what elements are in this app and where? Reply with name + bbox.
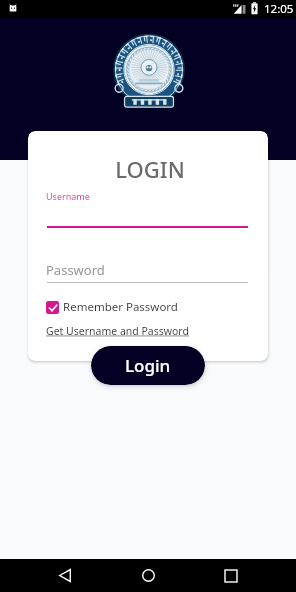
- staticText: Username: [46, 190, 90, 202]
- staticText: LOGIN: [30, 154, 268, 184]
- button[interactable]: Recent apps: [211, 559, 251, 592]
- button[interactable]: Remember Password: [46, 299, 178, 315]
- button[interactable]: Login: [91, 346, 205, 385]
- staticText: 12:05: [264, 1, 294, 17]
- staticText: Login: [125, 354, 171, 377]
- button[interactable]: Home: [128, 559, 168, 592]
- button[interactable]: Back: [45, 559, 85, 592]
- staticText: Remember Password: [63, 299, 178, 315]
- button[interactable]: Get Username and Password: [46, 324, 189, 338]
- staticText: Password: [46, 261, 105, 279]
